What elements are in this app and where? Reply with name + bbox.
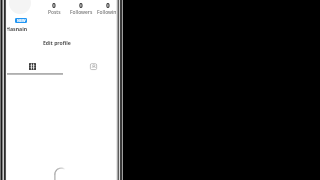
staticText: NEW: [17, 18, 26, 23]
staticText: Following: [97, 9, 120, 16]
staticText: 0: [79, 1, 83, 10]
staticText: 0: [106, 1, 110, 10]
button[interactable]: 0: [67, 1, 95, 15]
button[interactable]: Edit profile: [8, 38, 108, 48]
button[interactable]: Grid view: [23, 57, 41, 75]
button[interactable]: Profile photo: [9, 0, 31, 14]
staticText: Posts: [48, 9, 61, 16]
staticText: 0: [52, 1, 56, 10]
button[interactable]: 0: [94, 1, 122, 15]
staticText: Hasnain: [6, 25, 28, 32]
button[interactable]: 0: [40, 1, 68, 15]
staticText: Followers: [70, 9, 93, 16]
button[interactable]: NEW: [15, 18, 27, 23]
staticText: Edit profile: [43, 40, 71, 47]
button[interactable]: Tagged photos: [84, 57, 102, 75]
